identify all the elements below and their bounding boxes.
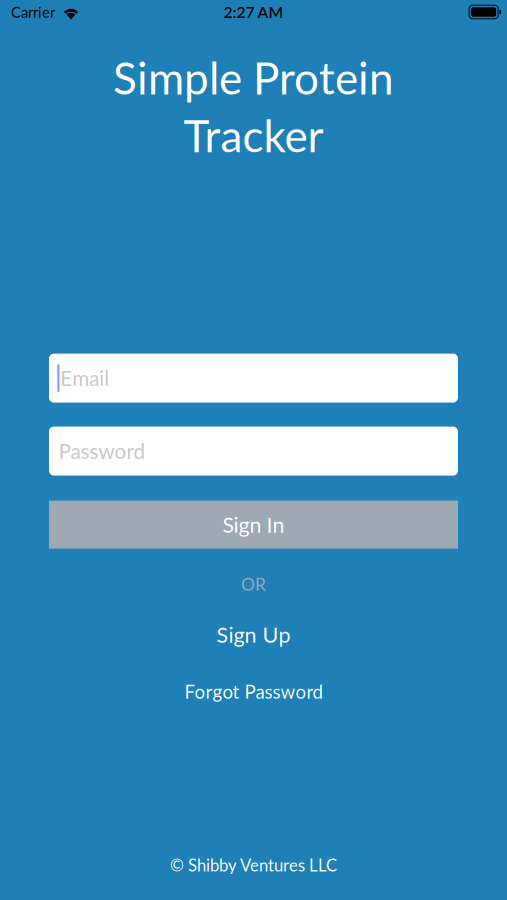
staticText: Sign In [222, 512, 284, 537]
button[interactable]: Password [49, 427, 458, 476]
staticText: Simple Protein [113, 51, 394, 104]
staticText: Forgot Password [184, 680, 322, 703]
button[interactable]: Forgot Password [166, 676, 340, 707]
staticText: 2:27 AM [223, 3, 283, 21]
staticText: OR [241, 574, 266, 594]
staticText: Tracker [183, 109, 323, 162]
button[interactable]: Sign In [0, 501, 507, 549]
staticText: © Shibby Ventures LLC [170, 855, 337, 875]
staticText: Email [60, 366, 109, 390]
button[interactable]: Email [49, 354, 458, 403]
staticText: Password [58, 439, 145, 463]
button[interactable]: Sign Up [198, 617, 308, 651]
staticText: Carrier [11, 3, 55, 21]
staticText: Sign Up [216, 621, 290, 647]
